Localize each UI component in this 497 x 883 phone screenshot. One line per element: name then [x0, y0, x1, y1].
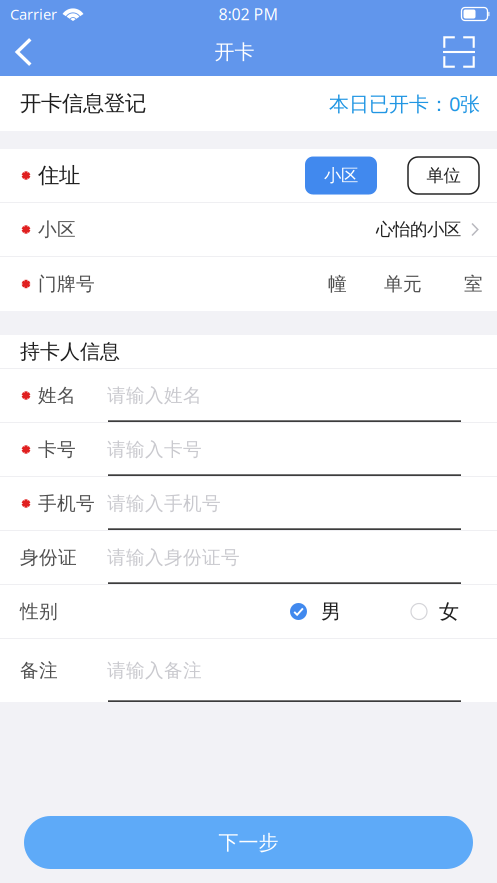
staticText: 身份证	[20, 546, 77, 569]
button[interactable]: 手机号	[0, 477, 497, 530]
staticText: 备注	[20, 659, 58, 682]
staticText: 小区	[38, 218, 76, 241]
staticText: 小区	[324, 165, 358, 186]
staticText: Carrier	[10, 4, 57, 24]
staticText: 室	[464, 272, 483, 295]
staticText: 女	[439, 599, 459, 624]
button[interactable]: 女	[411, 599, 459, 624]
button[interactable]: 卡号	[0, 423, 497, 476]
button[interactable]: Back	[0, 28, 48, 76]
button[interactable]: 姓名	[0, 369, 497, 422]
staticText: 单元	[384, 272, 422, 295]
button[interactable]: 小区	[305, 156, 377, 194]
staticText: 男	[321, 599, 341, 624]
button[interactable]: 下一步	[24, 816, 473, 869]
button[interactable]: 本日已开卡：0张	[329, 90, 480, 117]
button[interactable]: 身份证	[0, 531, 497, 584]
staticText: 幢	[328, 272, 347, 295]
staticText: 本日已开卡：0张	[329, 90, 480, 117]
staticText: 开卡	[214, 40, 254, 64]
staticText: 姓名	[38, 384, 76, 407]
staticText: 心怡的小区	[376, 219, 461, 240]
button[interactable]: 单位	[408, 157, 479, 194]
staticText: 请输入身份证号	[107, 546, 240, 569]
staticText: 请输入卡号	[107, 438, 202, 461]
staticText: 下一步	[218, 830, 278, 855]
button[interactable]: 男	[290, 599, 341, 624]
staticText: 门牌号	[38, 272, 95, 295]
staticText: 开卡信息登记	[20, 90, 146, 117]
button[interactable]: 备注	[0, 639, 497, 702]
staticText: 单位	[426, 165, 460, 186]
staticText: 住址	[38, 162, 80, 189]
staticText: 性别	[20, 600, 58, 623]
staticText: 请输入姓名	[107, 384, 202, 407]
staticText: 卡号	[38, 438, 76, 461]
staticText: 手机号	[38, 492, 95, 515]
staticText: 持卡人信息	[20, 339, 120, 364]
staticText: 8:02 PM	[218, 3, 278, 25]
button[interactable]: Scan code	[421, 28, 497, 76]
button[interactable]: 小区	[0, 203, 497, 256]
staticText: 请输入备注	[107, 659, 202, 682]
staticText: 请输入手机号	[107, 492, 221, 515]
